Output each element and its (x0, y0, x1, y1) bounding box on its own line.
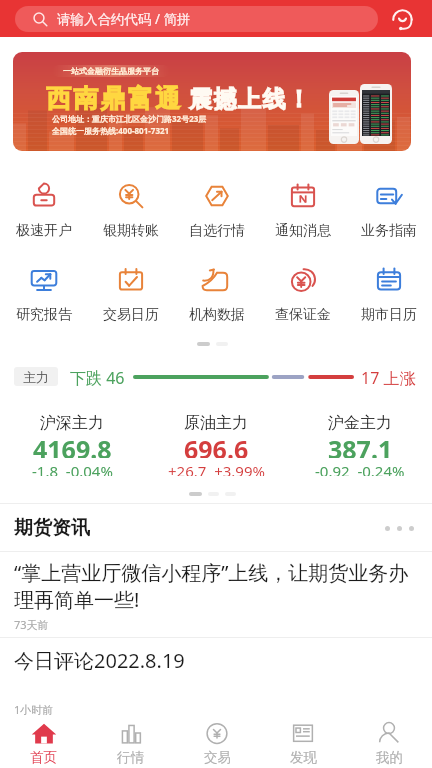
staticText: 查保证金 (275, 306, 331, 324)
button[interactable]: 交易 (174, 718, 260, 768)
staticText: 我的 (376, 749, 403, 766)
button[interactable]: 更多资讯 (381, 513, 418, 543)
button[interactable]: 极速开户 (0, 181, 87, 240)
staticText: 首页 (30, 749, 57, 766)
staticText: 主力 (23, 369, 49, 385)
button[interactable]: 今日评论2022.8.19 (0, 638, 432, 717)
button[interactable]: 沪金主力 (288, 413, 432, 476)
button[interactable]: 原油主力 (144, 413, 288, 476)
staticText: 原油主力 (184, 413, 248, 431)
staticText: 西南鼎富通 (45, 83, 181, 114)
staticText: 今日评论2022.8.19 (14, 647, 185, 674)
button[interactable]: 一站式金融衍生品服务平台 (13, 52, 411, 151)
button[interactable]: 期市日历 (346, 265, 432, 324)
staticText: 通知消息 (275, 222, 331, 240)
button[interactable]: 行情 (87, 718, 174, 768)
staticText: 73天前 (14, 617, 49, 632)
staticText: 自选行情 (189, 222, 245, 240)
button[interactable]: 我的 (346, 718, 432, 768)
staticText: 下跌 46 (70, 367, 125, 386)
staticText: 4169.8 (33, 432, 112, 458)
staticText: 17 上涨 (361, 367, 416, 386)
staticText: 387.1 (328, 432, 393, 458)
staticText: 期市日历 (361, 306, 417, 324)
button[interactable]: 发现 (260, 718, 346, 768)
staticText: “掌上营业厅微信小程序”上线，让期货业务办理再简单一些! (14, 559, 418, 613)
staticText: 极速开户 (16, 222, 72, 240)
staticText: 公司地址：重庆市江北区金沙门路32号23层 (52, 113, 207, 124)
button[interactable]: 业务指南 (346, 181, 432, 240)
button[interactable]: 机构数据 (174, 265, 260, 324)
staticText: 业务指南 (361, 222, 417, 240)
button[interactable]: 交易日历 (87, 265, 174, 324)
staticText: 沪深主力 (40, 413, 104, 431)
button[interactable]: 沪深主力 (0, 413, 144, 476)
staticText: 696.6 (184, 432, 249, 458)
button[interactable]: “掌上营业厅微信小程序”上线，让期货业务办理再简单一些! (0, 552, 432, 637)
staticText: 1小时前 (14, 702, 54, 717)
staticText: +26.7 +3.99% (168, 461, 265, 476)
staticText: -1.8 -0.04% (32, 461, 113, 476)
staticText: 全国统一服务热线:400-801-7321 (52, 125, 170, 136)
button[interactable]: 通知消息 (260, 181, 346, 240)
button[interactable]: 查保证金 (260, 265, 346, 324)
button[interactable]: 研究报告 (0, 265, 87, 324)
button[interactable]: 银期转账 (87, 181, 174, 240)
staticText: 沪金主力 (328, 413, 392, 431)
staticText: 行情 (117, 749, 144, 766)
staticText: 震撼上线！ (188, 85, 311, 114)
button[interactable]: 自选行情 (174, 181, 260, 240)
staticText: 交易日历 (103, 306, 159, 324)
staticText: 一站式金融衍生品服务平台 (63, 66, 159, 76)
staticText: 银期转账 (103, 222, 159, 240)
staticText: 机构数据 (189, 306, 245, 324)
staticText: 期货资讯 (14, 516, 90, 540)
staticText: 请输入合约代码 / 简拼 (57, 10, 191, 28)
staticText: 交易 (204, 749, 231, 766)
staticText: 研究报告 (16, 306, 72, 324)
button[interactable]: 在线客服 (389, 6, 415, 32)
button[interactable]: 请输入合约代码 / 简拼 (15, 6, 378, 32)
staticText: 发现 (290, 749, 317, 766)
button[interactable]: 首页 (0, 718, 87, 768)
staticText: -0.92 -0.24% (315, 461, 405, 476)
